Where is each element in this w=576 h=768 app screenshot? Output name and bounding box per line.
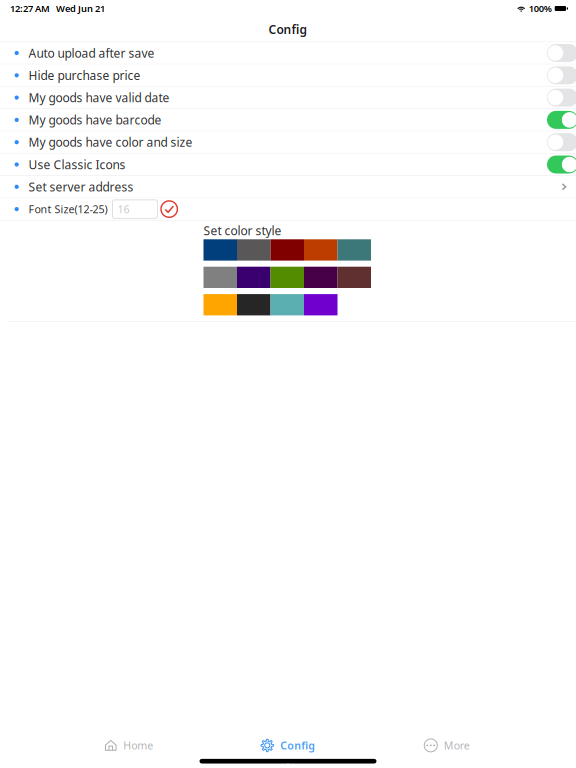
staticText: Wed Jun 21 — [56, 2, 105, 15]
button[interactable]: Use Classic Icons — [0, 154, 576, 175]
staticText: My goods have valid date — [28, 90, 169, 105]
staticText: Set color style — [203, 223, 281, 238]
button[interactable]: Color style option — [304, 239, 337, 261]
button[interactable]: Color style option — [270, 239, 304, 261]
button[interactable]: Color style option — [304, 267, 337, 288]
button[interactable]: Set server address — [0, 176, 576, 198]
button[interactable]: Home — [86, 737, 172, 753]
button[interactable]: Color style option — [337, 239, 371, 261]
staticText: My goods have color and size — [28, 134, 192, 150]
staticText: More — [444, 738, 470, 752]
button[interactable]: Hide purchase price — [0, 64, 576, 86]
button[interactable]: Color style option — [203, 239, 237, 261]
button[interactable]: My goods have barcode — [0, 109, 576, 131]
button[interactable]: Color style option — [270, 267, 304, 288]
button[interactable]: More — [404, 737, 490, 753]
button[interactable]: My goods have valid date — [0, 87, 576, 108]
button[interactable]: Confirm font size — [161, 201, 177, 217]
staticText: Home — [123, 738, 153, 752]
staticText: Font Size(12-25) — [28, 202, 107, 216]
staticText: Set server address — [28, 179, 133, 195]
staticText: 12:27 AM — [10, 2, 50, 15]
staticText: Use Classic Icons — [28, 156, 125, 172]
button[interactable]: Color style option — [237, 239, 270, 261]
button[interactable]: Auto upload after save — [0, 42, 576, 64]
staticText: 16 — [117, 202, 129, 216]
staticText: Config — [268, 21, 307, 37]
button[interactable]: Color style option — [304, 294, 337, 315]
button[interactable]: Config — [245, 737, 331, 753]
staticText: 100% — [529, 2, 552, 15]
staticText: Hide purchase price — [28, 67, 140, 83]
button[interactable]: Color style option — [237, 294, 270, 315]
staticText: Auto upload after save — [28, 45, 154, 61]
button[interactable]: Color style option — [203, 294, 237, 315]
staticText: Config — [280, 738, 315, 752]
button[interactable]: Color style option — [270, 294, 304, 315]
staticText: My goods have barcode — [28, 112, 161, 128]
button[interactable]: My goods have color and size — [0, 131, 576, 153]
button[interactable]: Font size field — [112, 200, 157, 218]
